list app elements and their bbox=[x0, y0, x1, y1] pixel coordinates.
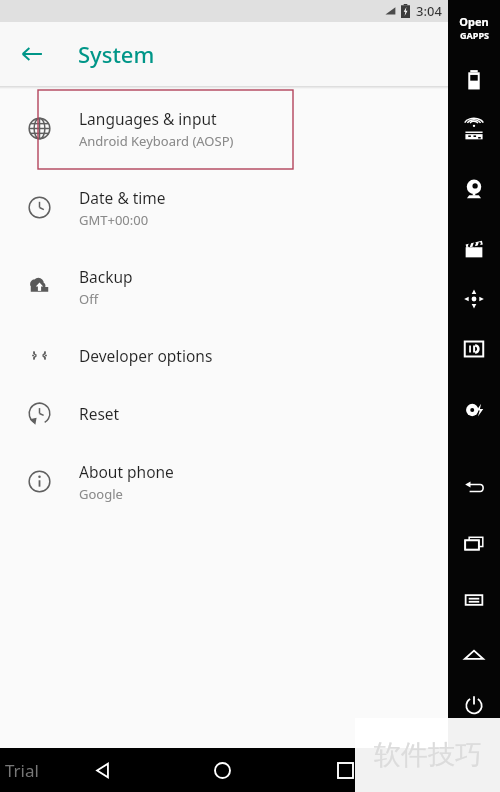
button[interactable]: Back bbox=[82, 750, 122, 790]
staticText: Google bbox=[79, 485, 123, 503]
button[interactable]: Reset bbox=[0, 384, 448, 442]
button[interactable]: About phone bbox=[0, 442, 448, 521]
button[interactable]: battery bbox=[457, 63, 491, 97]
staticText: Android Keyboard (AOSP) bbox=[79, 132, 234, 150]
button[interactable]: disc bbox=[457, 393, 491, 427]
button[interactable]: clapper bbox=[457, 232, 491, 266]
button[interactable]: webcam bbox=[457, 172, 491, 206]
staticText: Date & time bbox=[79, 187, 166, 208]
staticText: 软件技巧 bbox=[374, 738, 482, 772]
button[interactable]: home bbox=[457, 638, 491, 672]
staticText: 3:04 bbox=[416, 2, 442, 20]
staticText: Developer options bbox=[79, 345, 213, 366]
staticText: Off bbox=[79, 290, 99, 308]
button[interactable]: Home bbox=[202, 750, 242, 790]
button[interactable]: dpad bbox=[457, 282, 491, 316]
staticText: System bbox=[78, 39, 155, 69]
button[interactable]: id bbox=[457, 332, 491, 366]
button[interactable]: recents bbox=[457, 526, 491, 560]
staticText: Reset bbox=[79, 403, 120, 424]
button[interactable]: gps bbox=[457, 114, 491, 148]
staticText: Open bbox=[459, 14, 489, 29]
button[interactable]: Back bbox=[14, 36, 50, 72]
button[interactable]: menu bbox=[457, 583, 491, 617]
button[interactable]: Languages & input bbox=[0, 89, 448, 168]
staticText: GAPPS bbox=[460, 29, 489, 41]
button[interactable]: power bbox=[457, 688, 491, 722]
button[interactable]: Recent apps bbox=[325, 750, 365, 790]
button[interactable]: Developer options bbox=[0, 326, 448, 384]
staticText: Backup bbox=[79, 266, 133, 287]
button[interactable]: Date & time bbox=[0, 168, 448, 247]
staticText: Languages & input bbox=[79, 108, 217, 129]
button[interactable]: Open bbox=[459, 14, 489, 41]
staticText: Trial bbox=[5, 759, 39, 782]
staticText: About phone bbox=[79, 461, 174, 482]
button[interactable]: Backup bbox=[0, 247, 448, 326]
button[interactable]: back bbox=[457, 471, 491, 505]
staticText: GMT+00:00 bbox=[79, 211, 149, 229]
